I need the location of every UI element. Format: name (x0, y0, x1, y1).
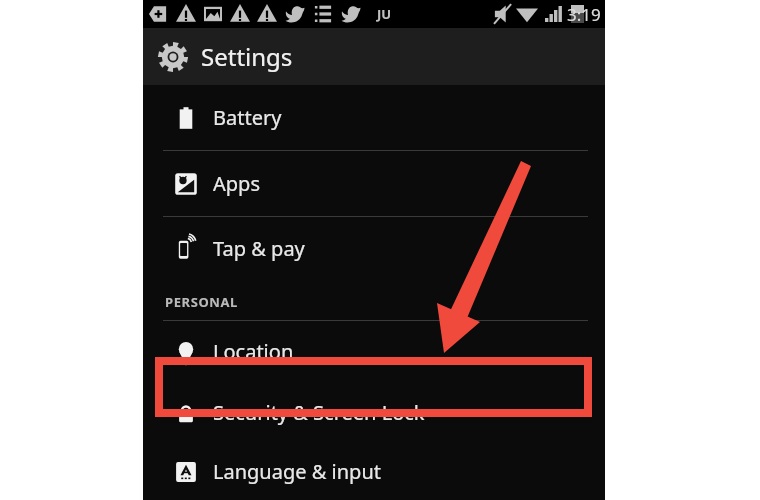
button[interactable]: Tap & pay (143, 217, 605, 279)
staticText: Language & input (213, 458, 381, 485)
button[interactable]: Security & Screen Lock (143, 381, 605, 443)
staticText: Settings (201, 40, 293, 73)
button[interactable]: Battery (143, 85, 605, 150)
staticText: Battery (213, 104, 282, 131)
staticText: Location (213, 338, 294, 365)
other: Settings (155, 39, 191, 75)
button[interactable]: Apps (143, 151, 605, 216)
button[interactable]: Language & input (143, 443, 605, 500)
staticText: PERSONAL (165, 293, 238, 311)
button[interactable]: Settings (143, 28, 605, 85)
staticText: Apps (213, 170, 260, 197)
staticText: Security & Screen Lock (213, 399, 425, 426)
staticText: JU (377, 5, 392, 23)
button[interactable]: Location (143, 321, 605, 381)
staticText: 3:19 (567, 3, 601, 26)
staticText: Tap & pay (213, 235, 305, 262)
